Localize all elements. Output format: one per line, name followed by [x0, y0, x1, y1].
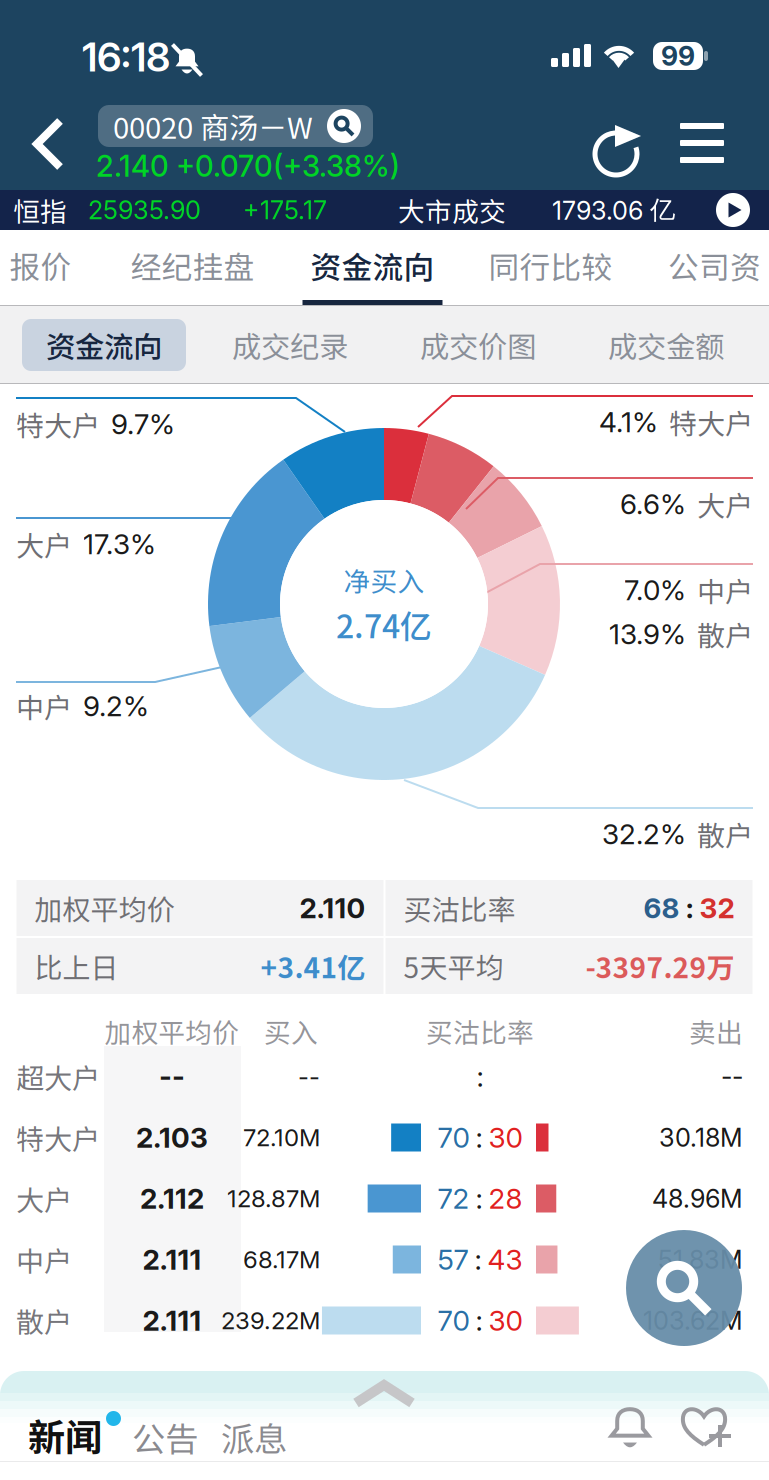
button[interactable]: 经纪挂盘: [101, 231, 283, 305]
staticText: 68.17M: [243, 1245, 320, 1274]
staticText: 00020 商汤－W: [113, 105, 313, 147]
staticText: 买入: [264, 1012, 318, 1050]
button[interactable]: Search: [626, 1230, 742, 1346]
staticText: 2.111: [142, 1304, 201, 1337]
button[interactable]: 公司资: [639, 231, 769, 305]
staticText: --: [721, 1061, 743, 1092]
staticText: :: [475, 1121, 482, 1154]
staticText: 大户: [16, 1178, 72, 1219]
staticText: 比上日: [34, 946, 118, 986]
staticText: 公告: [132, 1413, 198, 1461]
staticText: 30: [488, 1121, 522, 1154]
staticText: +175.17: [243, 195, 327, 225]
staticText: 57: [437, 1243, 468, 1276]
staticText: 大户: [697, 484, 753, 524]
staticText: 32: [699, 891, 734, 925]
staticText: 6.6%: [620, 487, 686, 521]
staticText: 散户: [16, 1300, 72, 1341]
staticText: 资金流向: [310, 243, 434, 288]
button[interactable]: Price alert: [608, 1400, 652, 1448]
staticText: 恒指: [13, 191, 67, 229]
staticText: 17.3%: [83, 527, 156, 561]
staticText: 9.2%: [83, 689, 149, 723]
staticText: 净买入: [343, 560, 424, 599]
staticText: 资金流向: [46, 324, 162, 366]
staticText: 2.112: [140, 1182, 204, 1215]
staticText: 超大户: [16, 1056, 100, 1097]
staticText: 成交价图: [420, 324, 536, 366]
staticText: 7.0%: [624, 573, 686, 607]
staticText: 16:18: [82, 33, 170, 81]
staticText: 特大户: [16, 404, 100, 444]
staticText: 72: [437, 1182, 469, 1215]
staticText: 成交纪录: [232, 324, 348, 366]
staticText: 4.1%: [599, 405, 658, 439]
button[interactable]: Back: [10, 104, 84, 184]
staticText: :: [474, 1243, 481, 1276]
staticText: 2.103: [136, 1121, 208, 1154]
staticText: 大市成交: [398, 191, 506, 229]
staticText: 中户: [16, 1239, 72, 1280]
staticText: 103.62M: [643, 1305, 743, 1336]
staticText: +3.41亿: [260, 946, 365, 986]
staticText: 25935.90: [88, 195, 201, 225]
staticText: 32.2%: [602, 817, 686, 851]
staticText: 经纪挂盘: [130, 243, 254, 288]
staticText: 9.7%: [111, 407, 175, 441]
button[interactable]: 00020 商汤－W: [98, 105, 373, 147]
staticText: 同行比较: [488, 243, 612, 288]
button[interactable]: 派息: [221, 1411, 293, 1463]
staticText: 派息: [221, 1413, 287, 1461]
staticText: 2.74亿: [336, 601, 432, 647]
staticText: 加权平均价: [104, 1012, 239, 1050]
staticText: 大户: [16, 524, 72, 564]
staticText: 成交金额: [608, 324, 724, 366]
staticText: :: [475, 1304, 482, 1337]
staticText: 239.22M: [221, 1306, 320, 1335]
staticText: :: [679, 891, 699, 925]
staticText: :: [476, 1060, 483, 1093]
button[interactable]: Refresh: [578, 102, 654, 184]
staticText: 散户: [697, 614, 753, 654]
staticText: 70: [437, 1304, 469, 1337]
staticText: -3397.29万: [585, 946, 734, 986]
staticText: 70: [437, 1121, 469, 1154]
staticText: 51.83M: [658, 1244, 743, 1275]
staticText: 30: [488, 1304, 522, 1337]
staticText: 买沽比率: [403, 888, 515, 928]
button[interactable]: 新闻: [28, 1409, 108, 1461]
staticText: 新闻: [28, 1408, 102, 1462]
staticText: 72.10M: [243, 1123, 320, 1152]
staticText: 99: [661, 40, 695, 72]
staticText: 1793.06 亿: [552, 194, 675, 226]
staticText: 28: [488, 1182, 522, 1215]
button[interactable]: 报价: [0, 231, 101, 305]
staticText: 加权平均价: [34, 888, 174, 928]
staticText: 128.87M: [227, 1184, 320, 1213]
staticText: 特大户: [669, 402, 753, 442]
staticText: 特大户: [16, 1117, 100, 1158]
staticText: --: [159, 1060, 185, 1093]
staticText: --: [298, 1062, 320, 1091]
button[interactable]: 资金流向: [283, 231, 461, 305]
button[interactable]: 成交金额: [584, 319, 748, 371]
button[interactable]: 成交价图: [396, 319, 560, 371]
button[interactable]: 成交纪录: [208, 319, 372, 371]
button[interactable]: 同行比较: [461, 231, 639, 305]
button[interactable]: Menu: [664, 102, 740, 184]
staticText: :: [475, 1182, 482, 1215]
staticText: 13.9%: [609, 617, 686, 651]
staticText: 中户: [16, 686, 72, 726]
staticText: 30.18M: [659, 1122, 743, 1153]
button[interactable]: 公告: [132, 1411, 204, 1463]
staticText: 散户: [697, 814, 753, 854]
staticText: 68: [643, 891, 679, 925]
button[interactable]: 资金流向: [22, 319, 186, 371]
staticText: 买沽比率: [426, 1012, 534, 1050]
staticText: 43: [487, 1243, 522, 1276]
staticText: 2.111: [142, 1243, 201, 1276]
button[interactable]: Add to watchlist: [679, 1401, 729, 1449]
staticText: 公司资: [668, 243, 761, 288]
staticText: 中户: [697, 570, 753, 610]
staticText: 卖出: [689, 1012, 743, 1050]
